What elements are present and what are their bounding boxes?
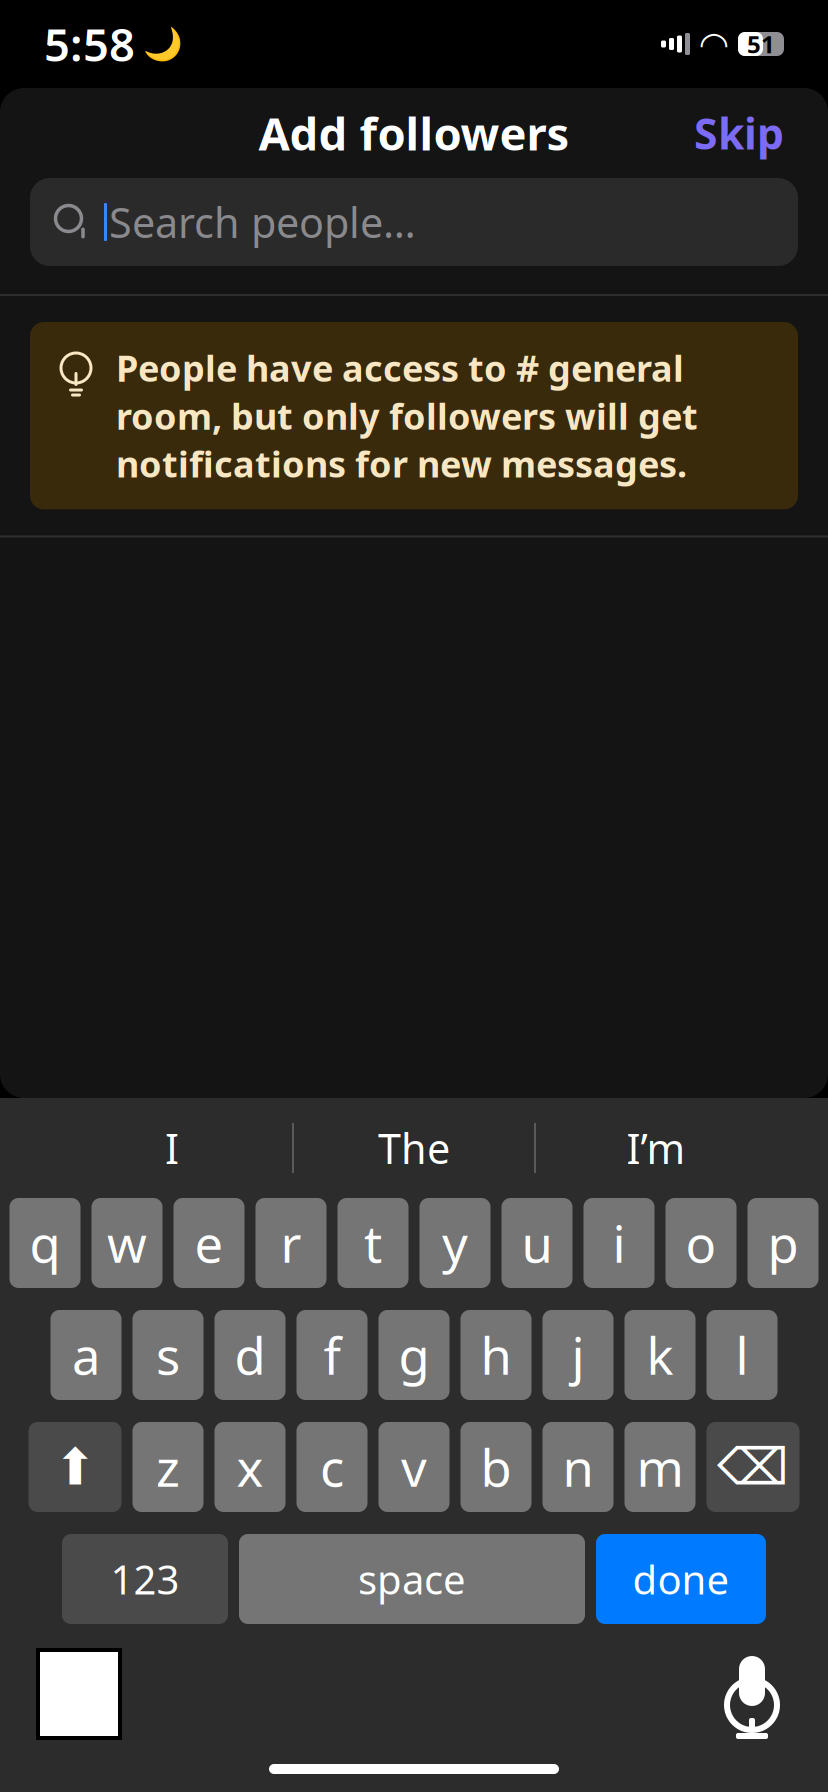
button[interactable]: Emoji: [38, 1650, 120, 1738]
button[interactable]: r: [255, 1198, 326, 1288]
button[interactable]: Search people: [30, 178, 798, 266]
staticText: done: [632, 1552, 729, 1605]
button[interactable]: h: [460, 1310, 531, 1400]
button[interactable]: f: [296, 1310, 367, 1400]
button[interactable]: n: [542, 1422, 613, 1512]
button[interactable]: q: [9, 1198, 80, 1288]
button[interactable]: m: [624, 1422, 695, 1512]
button[interactable]: Shift: [28, 1422, 121, 1512]
button[interactable]: l: [706, 1310, 777, 1400]
button[interactable]: k: [624, 1310, 695, 1400]
staticText: ◠: [700, 24, 727, 64]
button[interactable]: e: [173, 1198, 244, 1288]
button[interactable]: t: [337, 1198, 408, 1288]
staticText: g: [398, 1321, 429, 1389]
button[interactable]: 123: [62, 1534, 228, 1624]
staticText: 🌙: [143, 26, 183, 62]
staticText: c: [320, 1433, 344, 1501]
staticText: ⬆: [54, 1438, 96, 1496]
staticText: b: [480, 1433, 511, 1501]
staticText: j: [571, 1321, 584, 1389]
button[interactable]: x: [214, 1422, 285, 1512]
staticText: s: [156, 1321, 180, 1389]
button[interactable]: I: [52, 1119, 292, 1177]
staticText: p: [767, 1209, 798, 1277]
button[interactable]: p: [747, 1198, 818, 1288]
button[interactable]: o: [665, 1198, 736, 1288]
button[interactable]: done: [596, 1534, 766, 1624]
staticText: u: [521, 1209, 552, 1277]
staticText: k: [646, 1321, 673, 1389]
staticText: Skip: [694, 105, 784, 161]
staticText: The: [378, 1121, 450, 1175]
staticText: I’m: [626, 1121, 685, 1175]
staticText: a: [72, 1321, 100, 1389]
staticText: h: [480, 1321, 511, 1389]
staticText: n: [562, 1433, 593, 1501]
button[interactable]: Dictation: [714, 1646, 790, 1742]
button[interactable]: s: [132, 1310, 203, 1400]
button[interactable]: I’m: [536, 1119, 776, 1177]
staticText: y: [442, 1209, 468, 1277]
staticText: o: [685, 1209, 716, 1277]
button[interactable]: a: [50, 1310, 121, 1400]
staticText: 5:58: [44, 14, 135, 74]
staticText: m: [636, 1433, 683, 1501]
staticText: e: [194, 1209, 223, 1277]
staticText: 51: [747, 28, 775, 60]
staticText: ⌫: [717, 1438, 789, 1496]
button[interactable]: d: [214, 1310, 285, 1400]
button[interactable]: w: [91, 1198, 162, 1288]
staticText: w: [107, 1209, 147, 1277]
staticText: 123: [110, 1552, 179, 1605]
button[interactable]: y: [419, 1198, 490, 1288]
button[interactable]: i: [583, 1198, 654, 1288]
button[interactable]: c: [296, 1422, 367, 1512]
button[interactable]: Delete: [706, 1422, 799, 1512]
staticText: People have access to # general room, bu…: [116, 344, 698, 487]
staticText: Add followers: [258, 103, 569, 163]
button[interactable]: The: [294, 1119, 534, 1177]
staticText: t: [364, 1209, 382, 1277]
button[interactable]: space: [239, 1534, 585, 1624]
button[interactable]: g: [378, 1310, 449, 1400]
button[interactable]: z: [132, 1422, 203, 1512]
staticText: r: [280, 1209, 301, 1277]
staticText: I: [165, 1121, 179, 1175]
staticText: v: [401, 1433, 427, 1501]
button[interactable]: b: [460, 1422, 531, 1512]
staticText: space: [358, 1552, 466, 1605]
staticText: Search people…: [109, 195, 416, 249]
staticText: i: [612, 1209, 625, 1277]
button[interactable]: j: [542, 1310, 613, 1400]
staticText: x: [236, 1433, 263, 1501]
staticText: z: [156, 1433, 180, 1501]
button[interactable]: Skip: [684, 97, 794, 169]
staticText: f: [323, 1321, 340, 1389]
staticText: q: [29, 1209, 60, 1277]
button[interactable]: v: [378, 1422, 449, 1512]
staticText: d: [234, 1321, 265, 1389]
staticText: l: [735, 1321, 748, 1389]
button[interactable]: u: [501, 1198, 572, 1288]
